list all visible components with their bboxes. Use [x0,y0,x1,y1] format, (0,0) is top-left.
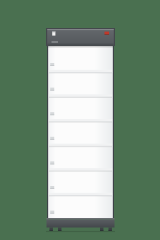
button[interactable]: Battery storage cabinet product image [0,0,160,240]
